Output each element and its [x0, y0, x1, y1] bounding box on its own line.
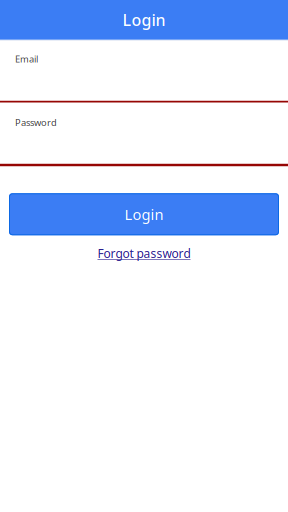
- button[interactable]: Password: [0, 102, 288, 166]
- staticText: Email: [15, 53, 38, 65]
- staticText: Login: [122, 9, 165, 30]
- staticText: Forgot password: [97, 245, 190, 261]
- staticText: Login: [124, 204, 163, 224]
- button[interactable]: Forgot password: [0, 244, 288, 262]
- button[interactable]: Login: [9, 193, 279, 235]
- staticText: Password: [15, 116, 57, 129]
- button[interactable]: Email: [0, 41, 288, 102]
